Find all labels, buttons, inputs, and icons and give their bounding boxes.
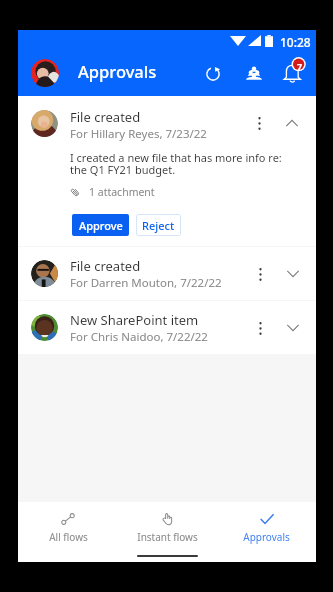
staticText: Approvals bbox=[243, 530, 290, 544]
staticText: For Chris Naidoo, 7/22/22 bbox=[70, 329, 208, 345]
staticText: For Darren Mouton, 7/22/22 bbox=[70, 275, 222, 291]
staticText: Approvals bbox=[78, 60, 157, 82]
button[interactable]: Approve bbox=[72, 214, 129, 236]
staticText: 10:28 bbox=[280, 34, 311, 50]
staticText: Reject bbox=[142, 218, 175, 233]
button[interactable]: Refresh bbox=[201, 62, 225, 86]
staticText: For Hillary Reyes, 7/23/22 bbox=[70, 126, 207, 142]
button[interactable]: Account bbox=[31, 59, 59, 87]
button[interactable]: Teams bbox=[242, 62, 266, 86]
staticText: Approve bbox=[79, 218, 123, 233]
button[interactable]: More options bbox=[249, 317, 271, 339]
button[interactable]: New SharePoint item bbox=[18, 301, 316, 354]
button[interactable]: More options bbox=[249, 263, 271, 285]
staticText: 7 bbox=[297, 60, 303, 72]
staticText: File created bbox=[70, 108, 141, 126]
button[interactable]: Notifications bbox=[281, 59, 305, 83]
staticText: All flows bbox=[49, 530, 88, 544]
staticText: Instant flows bbox=[137, 530, 198, 544]
staticText: I created a new file that has more info … bbox=[70, 150, 282, 177]
staticText: 1 attachment bbox=[89, 185, 155, 199]
button[interactable]: More options bbox=[248, 112, 270, 134]
button[interactable]: Instant flows bbox=[118, 502, 217, 547]
button[interactable]: Expand bbox=[282, 317, 304, 339]
button[interactable]: File created bbox=[18, 247, 316, 300]
button[interactable]: All flows bbox=[18, 502, 118, 547]
button[interactable]: File created bbox=[18, 96, 316, 246]
staticText: New SharePoint item bbox=[70, 311, 199, 329]
button[interactable]: Reject bbox=[136, 214, 181, 236]
button[interactable]: Expand bbox=[282, 263, 304, 285]
button[interactable]: Collapse bbox=[281, 112, 303, 134]
staticText: File created bbox=[70, 257, 141, 275]
button[interactable]: Approvals bbox=[217, 502, 316, 547]
